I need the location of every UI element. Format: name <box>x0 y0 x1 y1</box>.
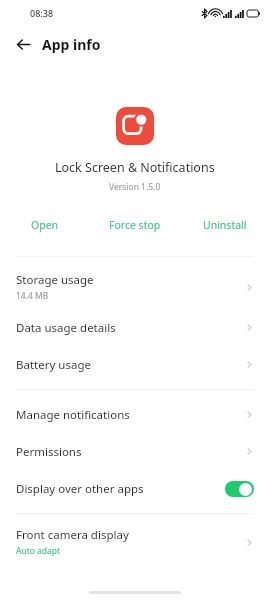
staticText: Auto adapt <box>16 545 61 557</box>
button[interactable]: Display over other apps <box>0 470 270 507</box>
button[interactable]: Back <box>9 30 37 58</box>
button[interactable]: Battery usage <box>0 346 270 383</box>
staticText: Manage notifications <box>16 407 130 423</box>
button[interactable]: Manage notifications <box>0 396 270 433</box>
staticText: App info <box>42 35 101 54</box>
button[interactable]: Data usage details <box>0 309 270 346</box>
staticText: Lock Screen & Notifications <box>55 159 215 176</box>
staticText: Display over other apps <box>16 481 225 497</box>
staticText: 08:38 <box>30 7 54 19</box>
staticText: 14.4 MB <box>16 290 49 302</box>
staticText: Storage usage <box>16 272 94 288</box>
button[interactable]: Uninstall <box>180 213 270 237</box>
staticText: Permissions <box>16 444 82 460</box>
button[interactable]: Open <box>0 213 90 237</box>
button[interactable]: Front camera display <box>0 520 270 564</box>
staticText: Uninstall <box>203 218 247 232</box>
staticText: Front camera display <box>16 527 129 543</box>
staticText: Version 1.5.0 <box>109 181 161 193</box>
staticText: Open <box>31 218 59 232</box>
button[interactable]: Force stop <box>90 213 180 237</box>
staticText: Battery usage <box>16 357 91 373</box>
staticText: Force stop <box>109 218 161 232</box>
staticText: Data usage details <box>16 320 116 336</box>
button[interactable]: Permissions <box>0 433 270 470</box>
button[interactable]: Storage usage <box>0 265 270 309</box>
